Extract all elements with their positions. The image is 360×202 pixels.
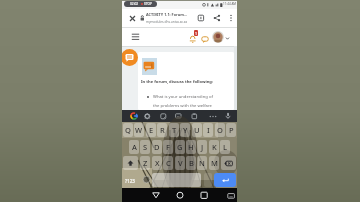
button[interactable]: H [186,140,196,154]
staticText: W [135,125,143,135]
button[interactable]: I [203,123,213,137]
staticText: D [154,142,160,152]
button[interactable] [204,173,212,187]
button[interactable] [200,192,208,199]
staticText: Q [125,125,131,135]
button[interactable] [225,112,231,120]
button[interactable]: M [209,156,219,170]
button[interactable]: W [134,123,144,137]
button[interactable]: Z [140,156,150,170]
button[interactable] [176,192,184,199]
button[interactable] [221,156,236,170]
button[interactable] [128,14,137,23]
button[interactable]: E [146,123,156,137]
button[interactable]: L [220,140,230,154]
button[interactable] [212,31,224,43]
button[interactable]: S [140,140,150,154]
button[interactable]: G [175,140,185,154]
button[interactable]: B [186,156,196,170]
staticText: J [201,142,204,152]
staticText: A [132,142,137,152]
button[interactable] [213,14,221,22]
button[interactable]: J [197,140,207,154]
button[interactable] [225,36,230,41]
staticText: T [172,125,177,135]
staticText: mymodules.dhs.unisa.ac.za [146,20,188,24]
staticText: G [177,142,183,152]
button[interactable] [189,35,197,43]
staticText: U [194,125,200,135]
button[interactable] [191,113,198,120]
staticText: M [211,158,218,168]
staticText: the problems with the welfare [153,103,212,109]
staticText: 11:44 AM [223,2,237,6]
button[interactable] [122,49,138,66]
staticText: What is your understanding of [153,94,213,100]
staticText: ?123 [125,178,136,184]
staticText: R [160,125,165,135]
button[interactable] [197,14,205,22]
button[interactable]: P [226,123,236,137]
staticText: K [212,142,217,152]
staticText: Z [143,158,148,168]
staticText: V [178,158,183,168]
staticText: B [189,158,194,168]
staticText: In the forum, discuss the following: [141,79,214,85]
staticText: C [166,158,171,168]
button[interactable] [175,113,182,119]
button[interactable] [152,192,160,199]
button[interactable]: ?123 [124,176,137,185]
button[interactable]: N [197,156,207,170]
button[interactable]: Q [123,123,133,137]
button[interactable] [152,173,201,187]
staticText: P [229,125,234,135]
staticText: I [207,125,210,135]
button[interactable]: D [152,140,162,154]
button[interactable]: T [169,123,179,137]
button[interactable]: R [157,123,167,137]
button[interactable] [160,113,167,120]
button[interactable]: F [163,140,173,154]
button[interactable] [130,112,138,120]
button[interactable]: X [152,156,162,170]
button[interactable]: Y [180,123,190,137]
staticText: N [199,158,205,168]
button[interactable] [201,36,210,44]
staticText: Y [183,125,188,135]
staticText: H [188,142,194,152]
button[interactable]: O [215,123,225,137]
staticText: O [217,125,223,135]
staticText: 1 [195,31,198,36]
staticText: F [166,142,170,152]
button[interactable]: V [175,156,185,170]
button[interactable] [123,156,138,170]
staticText: E [149,125,154,135]
staticText: ACTIVITY 1.1: Forum... [146,12,188,17]
button[interactable]: K [209,140,219,154]
button[interactable] [227,193,235,199]
staticText: S [143,142,148,152]
button[interactable] [144,113,151,120]
staticText: L [223,142,228,152]
staticText: 02:02 [130,2,139,6]
button[interactable] [228,14,234,22]
button[interactable]: C [163,156,173,170]
staticText: STOP [144,2,152,6]
button[interactable]: A [129,140,139,154]
button[interactable] [131,33,140,41]
button[interactable]: 02:02 [124,1,157,7]
button[interactable]: U [192,123,202,137]
button[interactable] [214,173,236,187]
button[interactable] [142,175,151,184]
staticText: X [155,158,160,168]
